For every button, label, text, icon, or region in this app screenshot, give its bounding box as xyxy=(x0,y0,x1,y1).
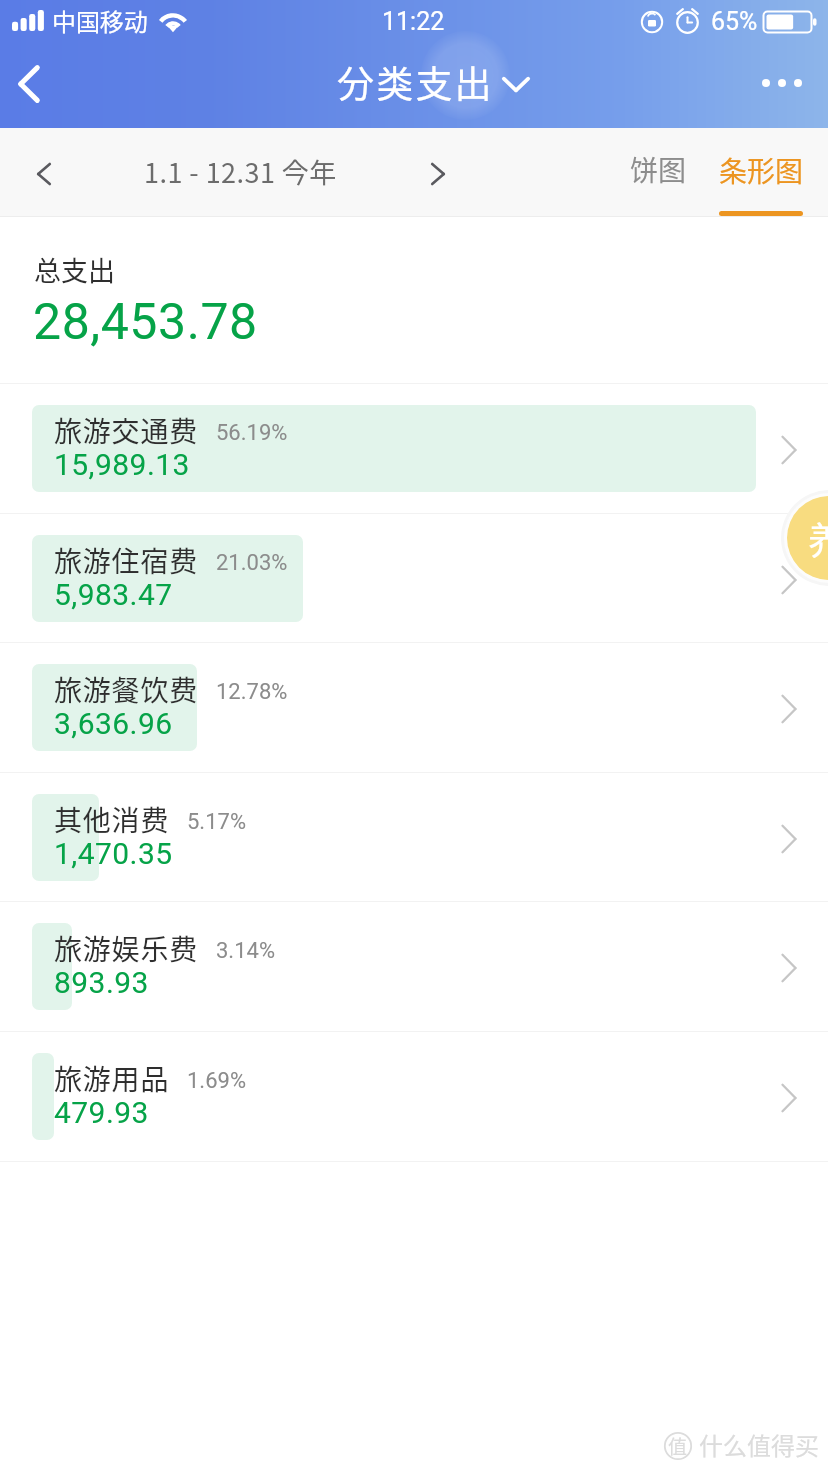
staticText: 1.69% xyxy=(187,1068,247,1094)
staticText: 28,453.78 xyxy=(33,293,258,352)
staticText: 其他消费 xyxy=(54,799,170,840)
button[interactable]: 饼图 xyxy=(615,138,701,200)
staticText: 饼图 xyxy=(630,149,687,190)
staticText: 56.19% xyxy=(216,420,288,446)
staticText: 旅游用品 xyxy=(54,1058,170,1099)
staticText: 中国移动 xyxy=(52,3,148,38)
staticText: 旅游餐饮费 xyxy=(54,669,199,710)
button[interactable]: Back xyxy=(0,44,58,124)
staticText: 1,470.35 xyxy=(54,836,173,871)
button[interactable]: 其他消费 xyxy=(0,773,828,903)
button[interactable]: Previous period xyxy=(19,149,69,199)
staticText: 3.14% xyxy=(216,938,276,964)
staticText: 3,636.96 xyxy=(54,706,173,741)
button[interactable]: 旅游餐饮费 xyxy=(0,643,828,773)
staticText: 21.03% xyxy=(216,550,288,576)
staticText: 65% xyxy=(711,7,758,36)
button[interactable]: 分类支出 xyxy=(330,44,535,124)
button[interactable]: 条形图 xyxy=(706,128,816,216)
staticText: 养 xyxy=(808,510,828,565)
staticText: 条形图 xyxy=(719,150,804,191)
staticText: 12.78% xyxy=(216,679,288,705)
staticText: 旅游交通费 xyxy=(54,410,199,451)
staticText: 总支出 xyxy=(34,250,115,289)
staticText: 旅游娱乐费 xyxy=(54,928,199,969)
button[interactable]: 旅游住宿费 xyxy=(0,514,828,644)
staticText: 11:22 xyxy=(382,7,445,36)
staticText: 什么值得买 xyxy=(699,1427,819,1462)
button[interactable]: Next period xyxy=(413,149,463,199)
button[interactable]: 旅游娱乐费 xyxy=(0,902,828,1032)
button[interactable]: 旅游用品 xyxy=(0,1032,828,1162)
staticText: 旅游住宿费 xyxy=(54,540,199,581)
staticText: 893.93 xyxy=(54,965,149,1000)
staticText: 5,983.47 xyxy=(54,577,173,612)
staticText: 1.1 - 12.31 今年 xyxy=(144,152,337,191)
staticText: 5.17% xyxy=(187,809,247,835)
button[interactable]: More options xyxy=(744,44,816,124)
staticText: 分类支出 xyxy=(337,55,494,109)
button[interactable]: 旅游交通费 xyxy=(0,384,828,514)
staticText: 15,989.13 xyxy=(54,447,190,482)
staticText: 479.93 xyxy=(54,1095,149,1130)
staticText: 值 xyxy=(668,1432,688,1460)
button[interactable]: Add record xyxy=(787,496,828,580)
